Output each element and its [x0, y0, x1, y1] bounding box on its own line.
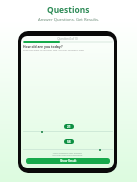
- staticText: Your answers stay private. You can edit …: [21, 151, 114, 157]
- staticText: How old are you today?: [23, 44, 63, 49]
- staticText: Drag the slider to set your age. You can…: [23, 48, 85, 51]
- staticText: 58: [67, 140, 71, 144]
- staticText: Questions: [47, 4, 90, 15]
- staticText: Question 4 of 10: [21, 37, 114, 41]
- button[interactable]: 58: [64, 139, 74, 144]
- button[interactable]: Show Result: [26, 158, 110, 164]
- staticText: Answer Questions. Get Results.: [38, 17, 100, 23]
- button[interactable]: [23, 148, 113, 151]
- button[interactable]: 21: [64, 124, 74, 129]
- button[interactable]: [23, 130, 113, 133]
- staticText: 21: [67, 125, 71, 129]
- staticText: Show Result: [60, 159, 77, 163]
